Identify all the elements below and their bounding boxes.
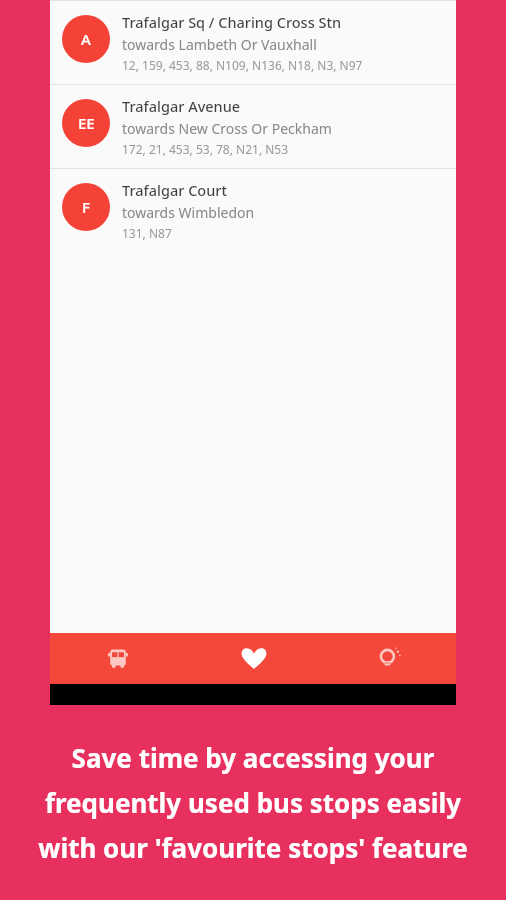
button[interactable]: A (50, 1, 456, 84)
staticText: A (81, 29, 91, 49)
staticText: Trafalgar Avenue (122, 96, 241, 116)
button[interactable]: F (50, 169, 456, 252)
staticText: frequently used bus stops easily (18, 785, 488, 820)
button[interactable]: Favourites (186, 633, 321, 684)
staticText: with our 'favourite stops' feature (18, 830, 488, 865)
staticText: towards Lambeth Or Vauxhall (122, 35, 317, 54)
button[interactable]: Tips (321, 633, 456, 684)
staticText: Save time by accessing your (18, 740, 488, 775)
staticText: towards Wimbledon (122, 203, 255, 222)
staticText: 131, N87 (122, 225, 172, 241)
staticText: 172, 21, 453, 53, 78, N21, N53 (122, 141, 289, 157)
staticText: towards New Cross Or Peckham (122, 119, 332, 138)
staticText: Trafalgar Sq / Charing Cross Stn (122, 12, 342, 32)
staticText: EE (78, 113, 95, 133)
button[interactable]: Bus stops (50, 633, 186, 684)
staticText: F (82, 197, 90, 217)
button[interactable]: EE (50, 85, 456, 168)
staticText: 12, 159, 453, 88, N109, N136, N18, N3, N… (122, 57, 363, 73)
staticText: Trafalgar Court (122, 180, 227, 200)
